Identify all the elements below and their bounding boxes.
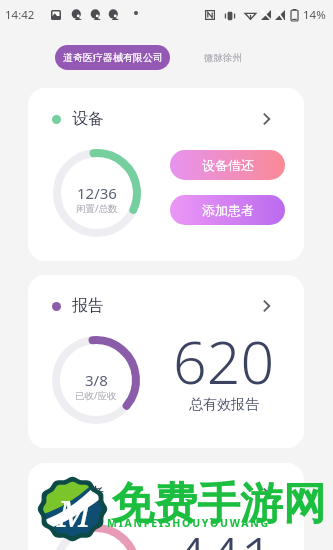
button[interactable]: 添加患者 bbox=[170, 195, 285, 225]
button[interactable]: 道奇医疗器械有限公司 bbox=[55, 45, 170, 70]
staticText: 道奇医疗器械有限公司 bbox=[63, 51, 163, 64]
staticText: 微脉徐州 bbox=[204, 52, 242, 64]
button[interactable]: 患者 bbox=[52, 482, 270, 506]
staticText: 14% bbox=[303, 7, 326, 23]
staticText: 620 bbox=[173, 321, 275, 401]
staticText: 设备 bbox=[72, 109, 104, 129]
staticText: M bbox=[57, 489, 91, 538]
button[interactable]: 设备 bbox=[52, 107, 270, 131]
staticText: MIANFEISHOUYOUWANG bbox=[107, 516, 270, 530]
staticText: 14:42 bbox=[5, 7, 35, 23]
staticText: 闲置/总数 bbox=[76, 202, 118, 215]
other: More bbox=[263, 488, 270, 500]
staticText: 添加患者 bbox=[202, 202, 254, 218]
staticText: 患者 bbox=[72, 484, 104, 504]
staticText: 免费手游网 bbox=[111, 477, 326, 531]
staticText: 441 bbox=[173, 517, 275, 550]
button[interactable]: 设备借还 bbox=[170, 150, 285, 180]
staticText: 设备借还 bbox=[202, 157, 254, 173]
staticText: 报告 bbox=[72, 296, 104, 316]
button[interactable]: 报告 bbox=[52, 294, 270, 318]
other: More bbox=[263, 113, 270, 125]
staticText: 12/36 bbox=[77, 183, 117, 203]
staticText: 已收/应收 bbox=[75, 389, 117, 402]
staticText: 总有效报告 bbox=[189, 396, 259, 414]
staticText: 3/8 bbox=[85, 370, 108, 390]
other: More bbox=[263, 300, 270, 312]
